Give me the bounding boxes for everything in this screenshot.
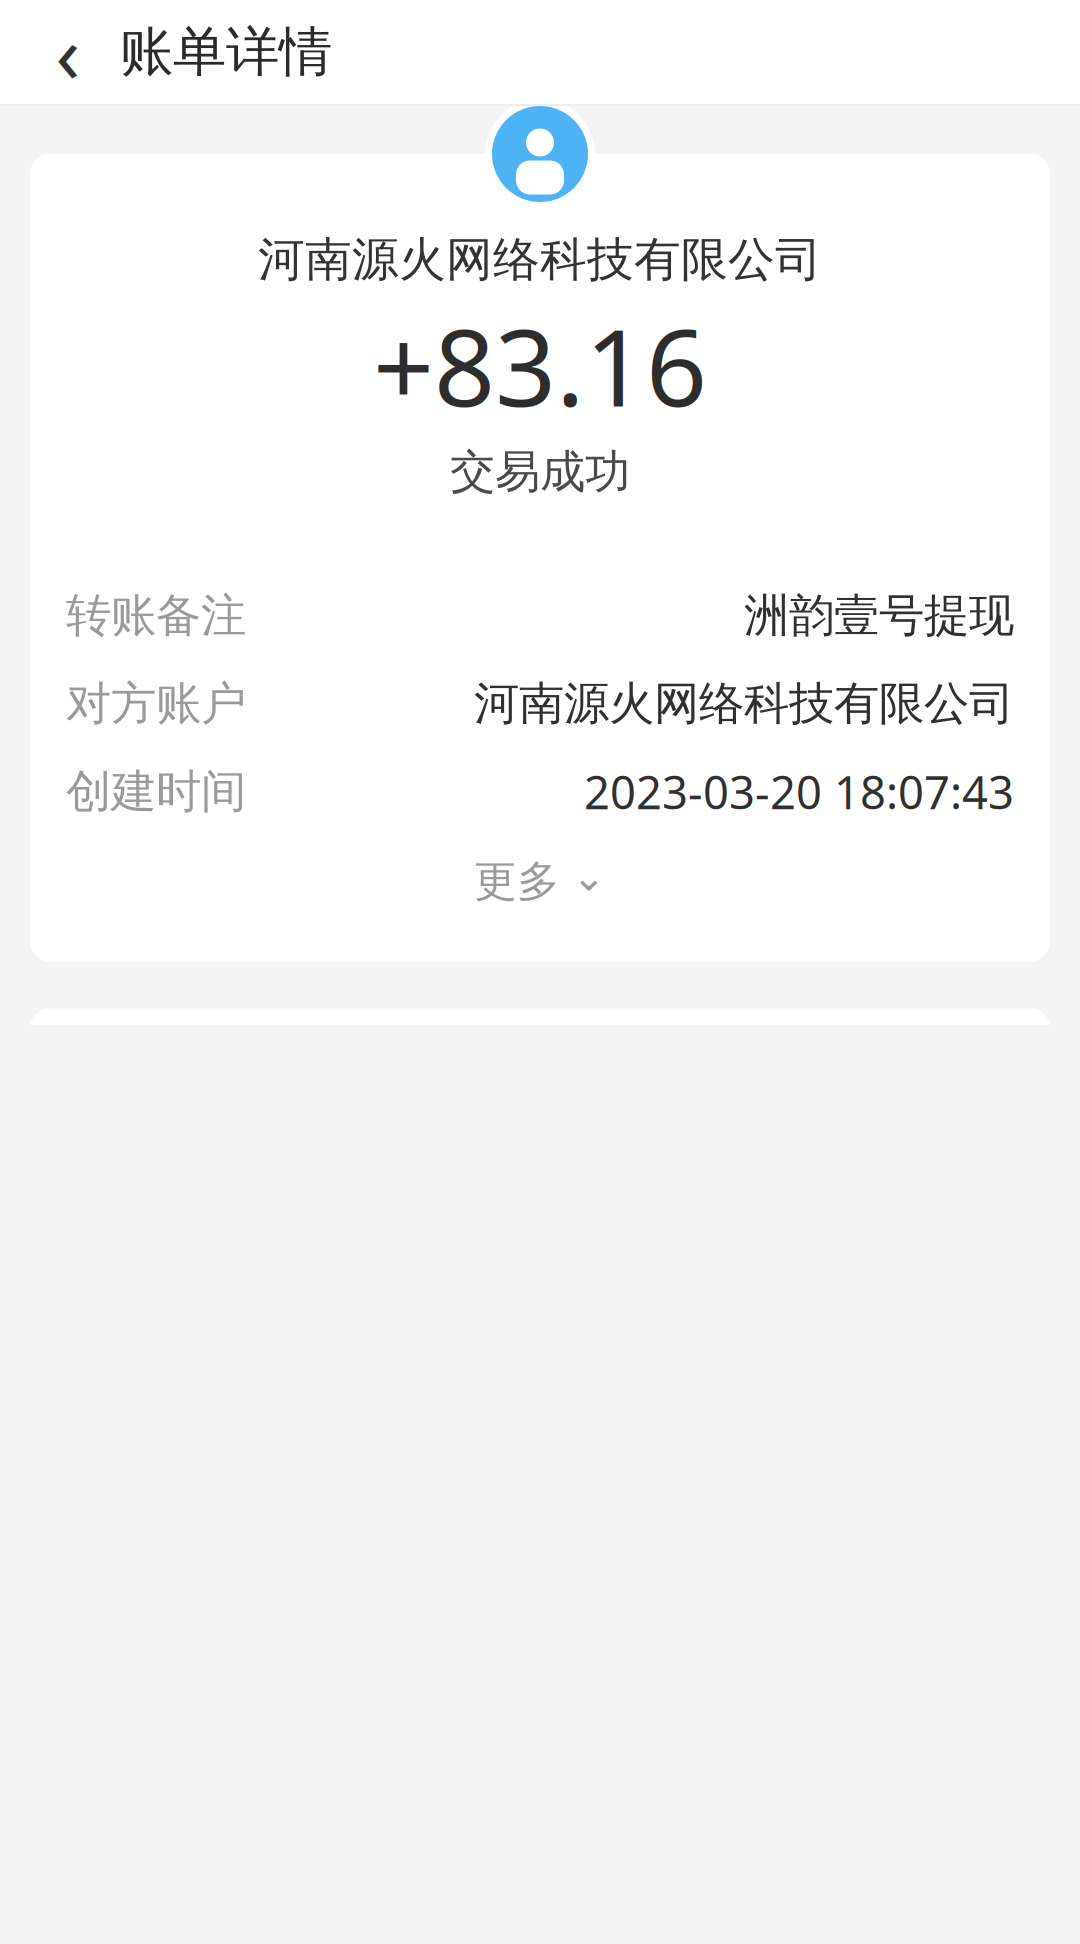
staticText: 创建时间 bbox=[66, 764, 246, 819]
staticText: 河南源火网络科技有限公司 bbox=[474, 676, 1014, 731]
staticText: 河南源火网络科技有限公司 bbox=[258, 231, 822, 288]
button[interactable]: 账单分类 bbox=[30, 1009, 1050, 1137]
staticText: ⌄ bbox=[572, 854, 606, 899]
button[interactable]: 更多 bbox=[30, 836, 1050, 928]
staticText: 交易成功 bbox=[450, 444, 630, 500]
staticText: ‹ bbox=[55, 0, 80, 105]
staticText: 对方账户 bbox=[66, 676, 246, 731]
staticText: 2023-03-20 18:07:43 bbox=[584, 762, 1014, 822]
staticText: 转账备注 bbox=[66, 588, 246, 643]
staticText: 账单详情 bbox=[120, 19, 332, 85]
staticText: 洲韵壹号提现 bbox=[744, 588, 1014, 643]
staticText: +83.16 bbox=[373, 294, 707, 436]
button[interactable]: 返回 bbox=[16, 0, 120, 104]
staticText: 更多 bbox=[474, 855, 560, 908]
